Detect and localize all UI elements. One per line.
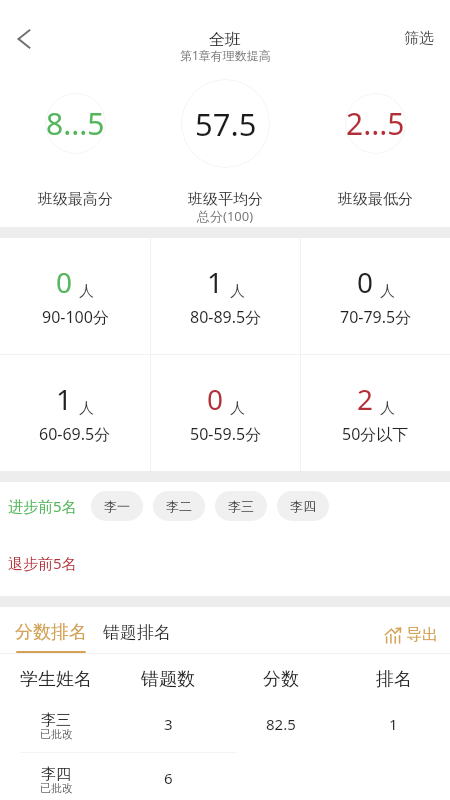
staticText: 李一	[104, 498, 130, 514]
button[interactable]: 李三	[0, 696, 450, 752]
button[interactable]: 0	[301, 238, 450, 354]
button[interactable]: 1	[151, 238, 300, 354]
staticText: 第1章有理数提高	[180, 47, 271, 63]
staticText: 学生姓名	[20, 668, 92, 691]
staticText: 班级最高分	[38, 190, 113, 209]
staticText: 李四	[290, 498, 316, 514]
staticText: 人	[380, 399, 395, 418]
button[interactable]: 李一	[91, 491, 143, 521]
staticText: 50分以下	[342, 423, 409, 445]
staticText: 1	[56, 380, 73, 418]
staticText: 人	[230, 399, 245, 418]
staticText: 错题数	[141, 668, 195, 691]
staticText: 筛选	[404, 29, 434, 48]
staticText: 已批改	[40, 727, 73, 741]
staticText: 进步前5名	[8, 496, 77, 516]
button[interactable]: 1	[0, 355, 150, 471]
staticText: 1	[389, 714, 398, 734]
staticText: 分数	[263, 668, 299, 691]
staticText: 班级平均分	[188, 190, 263, 209]
button[interactable]: 分数排名	[15, 621, 87, 644]
button[interactable]: 错题排名	[103, 622, 171, 643]
button[interactable]: 2	[301, 355, 450, 471]
staticText: 82.5	[266, 714, 296, 734]
staticText: 8...5	[46, 103, 105, 144]
staticText: 李二	[166, 498, 192, 514]
button[interactable]: 筛选	[396, 23, 442, 54]
staticText: 人	[230, 282, 245, 301]
button[interactable]: 李四	[0, 753, 450, 800]
staticText: 已批改	[40, 781, 73, 795]
staticText: 0	[207, 380, 224, 418]
button[interactable]: Export	[385, 625, 438, 645]
staticText: 全班	[209, 30, 241, 50]
button[interactable]: 0	[151, 355, 300, 471]
other: Export	[385, 628, 401, 643]
button[interactable]: 李二	[153, 491, 205, 521]
staticText: 排名	[376, 668, 412, 691]
staticText: 李三	[228, 498, 254, 514]
staticText: 90-100分	[42, 306, 109, 328]
staticText: 错题排名	[103, 622, 171, 643]
staticText: 人	[79, 282, 94, 301]
staticText: 人	[79, 399, 94, 418]
staticText: 总分(100)	[197, 207, 254, 225]
staticText: 2...5	[346, 103, 405, 144]
staticText: 6	[164, 768, 173, 788]
button[interactable]: 0	[0, 238, 150, 354]
staticText: 李三	[41, 711, 71, 730]
staticText: 80-89.5分	[190, 306, 262, 328]
staticText: 50-59.5分	[190, 423, 262, 445]
staticText: 1	[207, 263, 224, 301]
button[interactable]: 李四	[277, 491, 329, 521]
staticText: 60-69.5分	[39, 423, 111, 445]
staticText: 退步前5名	[8, 553, 77, 573]
staticText: 班级最低分	[338, 190, 413, 209]
staticText: 3	[164, 714, 173, 734]
staticText: 2	[357, 380, 374, 418]
staticText: 人	[380, 282, 395, 301]
staticText: 70-79.5分	[340, 306, 412, 328]
staticText: 导出	[406, 625, 438, 645]
button[interactable]: Back	[2, 17, 46, 61]
staticText: 57.5	[195, 103, 257, 145]
staticText: 0	[56, 263, 73, 301]
staticText: 李四	[41, 765, 71, 784]
button[interactable]: 李三	[215, 491, 267, 521]
staticText: 0	[357, 263, 374, 301]
staticText: 分数排名	[15, 621, 87, 644]
